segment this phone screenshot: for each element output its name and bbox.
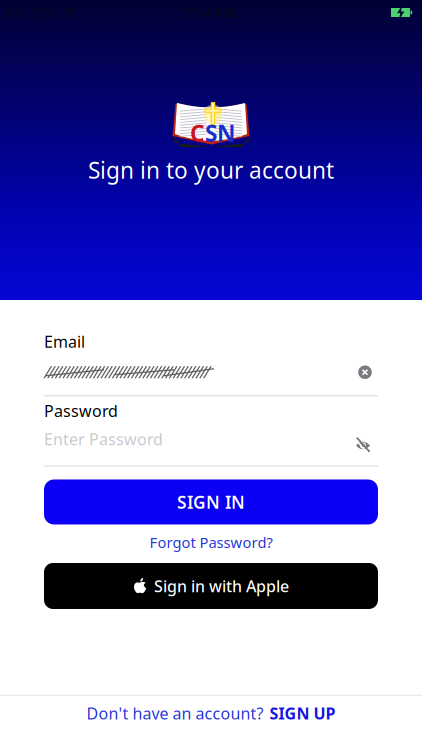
staticText: No SIM — [7, 3, 57, 22]
staticText: Sign in with Apple — [154, 575, 289, 596]
staticText: Sign in to your account — [88, 155, 334, 185]
button[interactable]: SIGN IN — [44, 479, 378, 524]
staticText: SIGN IN — [177, 490, 245, 513]
staticText: SIGN UP — [269, 703, 335, 724]
button[interactable] — [358, 365, 372, 379]
staticText: Don't have an account? — [86, 703, 263, 724]
staticText: Password — [44, 400, 118, 421]
button[interactable]: Forgot Password? — [149, 532, 272, 552]
staticText: C — [190, 118, 205, 148]
button[interactable]: Don't have an account? — [86, 703, 335, 724]
staticText: 7:14 PM — [182, 3, 237, 22]
button[interactable] — [355, 432, 371, 446]
staticText: SN — [205, 118, 235, 148]
staticText: Forgot Password? — [149, 532, 272, 552]
staticText: Email — [44, 331, 85, 352]
button[interactable]: Sign in with Apple — [44, 563, 378, 609]
staticText: Enter Password — [44, 428, 163, 450]
